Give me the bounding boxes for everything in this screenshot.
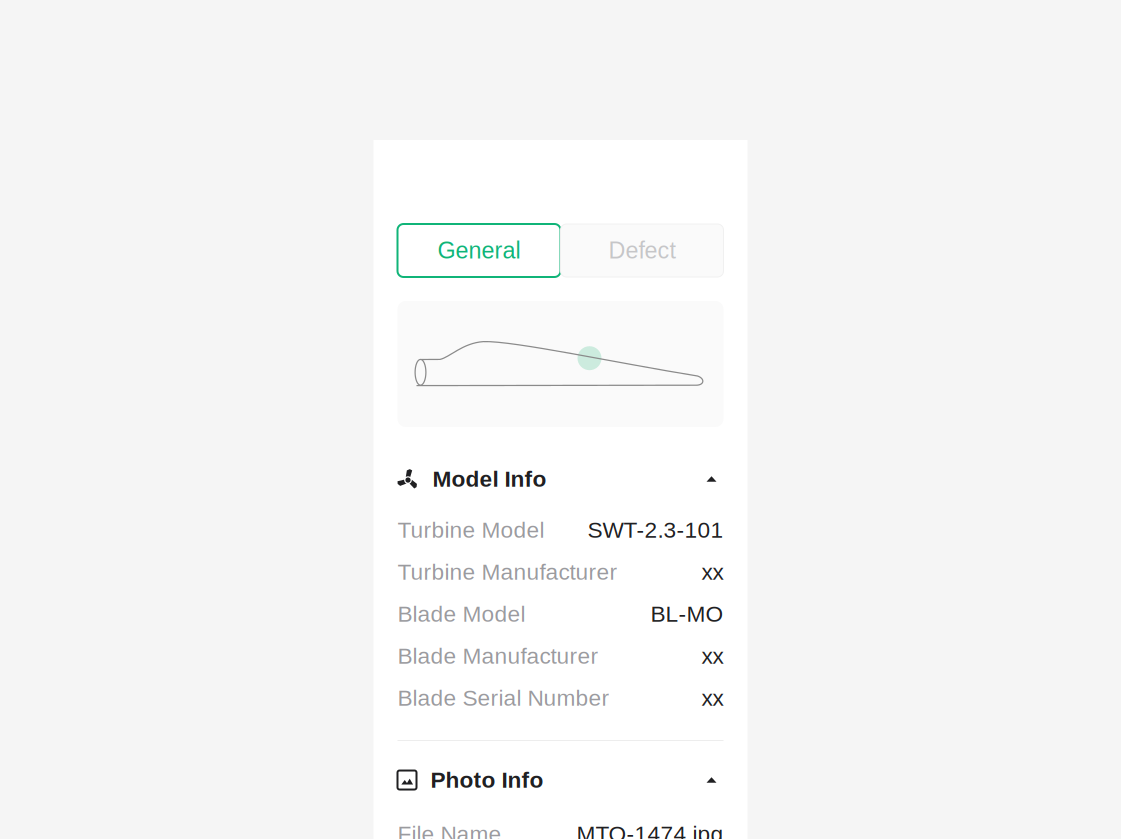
staticText: Turbine Manufacturer (397, 559, 617, 585)
staticText: General (437, 237, 520, 264)
staticText: Blade Serial Number (397, 685, 609, 711)
staticText: BL-MO (650, 601, 723, 627)
staticText: SWT-2.3-101 (587, 517, 723, 543)
staticText: Turbine Model (397, 517, 544, 543)
staticText: Model Info (432, 466, 546, 492)
staticText: Photo Info (430, 767, 543, 793)
button[interactable]: Model Info (397, 462, 723, 496)
staticText: xx (701, 643, 723, 669)
button[interactable]: Photo Info (397, 763, 723, 797)
staticText: Defect (608, 237, 675, 264)
staticText: File Name (397, 821, 501, 839)
staticText: xx (701, 685, 723, 711)
staticText: MTO-1474.jpg (576, 821, 723, 839)
staticText: Blade Manufacturer (397, 643, 598, 669)
button[interactable]: General (397, 224, 560, 277)
staticText: xx (701, 559, 723, 585)
button[interactable]: Defect (560, 224, 723, 277)
staticText: Blade Model (397, 601, 525, 627)
